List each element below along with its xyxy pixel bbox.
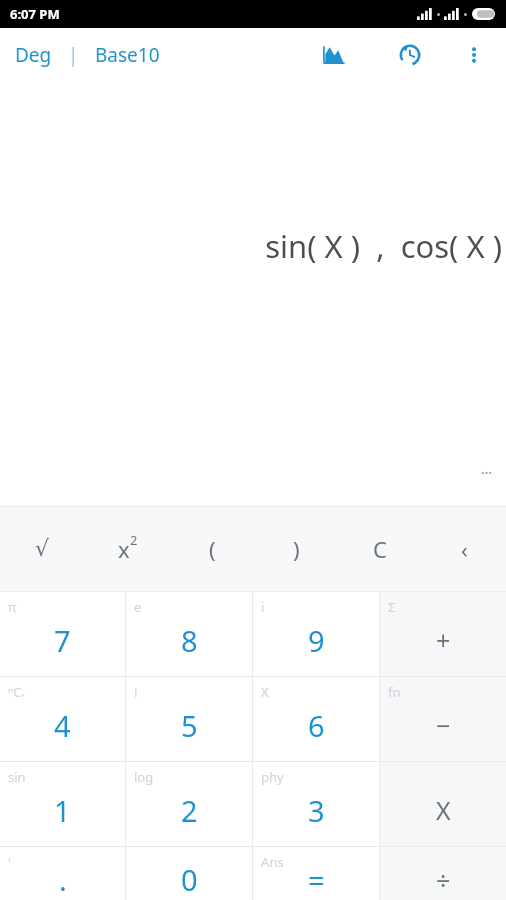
- staticText: =: [308, 860, 325, 899]
- staticText: ...: [481, 460, 492, 478]
- staticText: fn: [388, 683, 401, 701]
- button[interactable]: √: [0, 507, 85, 591]
- button[interactable]: (: [170, 507, 254, 591]
- staticText: 7: [54, 621, 71, 660]
- button[interactable]: phy: [253, 762, 379, 846]
- staticText: ⁿCᵣ: [8, 683, 25, 701]
- button[interactable]: log: [126, 762, 252, 846]
- button[interactable]: ‹: [422, 507, 506, 591]
- staticText: log: [134, 768, 154, 786]
- button[interactable]: ): [254, 507, 338, 591]
- staticText: +: [436, 623, 451, 657]
- staticText: e: [134, 598, 142, 616]
- staticText: −: [436, 708, 451, 742]
- staticText: ‹: [461, 534, 468, 564]
- staticText: √: [35, 536, 50, 562]
- button[interactable]: Σ: [380, 592, 506, 676]
- button[interactable]: fn: [380, 677, 506, 761]
- staticText: 4: [54, 706, 71, 745]
- button[interactable]: ⁿCᵣ: [0, 677, 125, 761]
- staticText: phy: [261, 768, 284, 786]
- staticText: ': [8, 853, 11, 871]
- staticText: 6: [308, 706, 325, 745]
- button[interactable]: Base10: [93, 38, 162, 72]
- staticText: π: [8, 598, 17, 616]
- staticText: !: [134, 683, 138, 701]
- staticText: Base10: [95, 42, 160, 68]
- staticText: (: [209, 534, 216, 564]
- staticText: X: [436, 793, 451, 827]
- button[interactable]: Graph: [312, 33, 356, 77]
- button[interactable]: C: [338, 507, 422, 591]
- staticText: Ans: [261, 853, 284, 871]
- button[interactable]: 0: [126, 847, 252, 900]
- staticText: .: [59, 860, 67, 899]
- button[interactable]: History: [388, 33, 432, 77]
- button[interactable]: Ans: [253, 847, 379, 900]
- button[interactable]: sin: [0, 762, 125, 846]
- staticText: X: [261, 683, 269, 701]
- staticText: Deg: [15, 42, 52, 68]
- button[interactable]: Deg: [13, 38, 54, 72]
- staticText: 9: [308, 621, 325, 660]
- button[interactable]: ÷: [380, 847, 506, 900]
- staticText: sin( X ) , cos( X ): [265, 225, 502, 267]
- staticText: 6:07 PM: [10, 5, 60, 23]
- staticText: i: [261, 598, 265, 616]
- staticText: ÷: [436, 863, 451, 897]
- staticText: 1: [54, 791, 71, 830]
- staticText: x: [118, 534, 130, 564]
- button[interactable]: More options: [454, 35, 494, 75]
- button[interactable]: e: [126, 592, 252, 676]
- staticText: Σ: [388, 598, 396, 616]
- staticText: 0: [181, 860, 198, 899]
- button[interactable]: X: [380, 762, 506, 846]
- button[interactable]: X: [253, 677, 379, 761]
- button[interactable]: x²: [85, 507, 170, 591]
- staticText: C: [373, 534, 387, 564]
- staticText: 2: [130, 531, 138, 549]
- button[interactable]: π: [0, 592, 125, 676]
- staticText: 3: [308, 791, 325, 830]
- staticText: sin: [8, 768, 26, 786]
- staticText: |: [68, 42, 79, 68]
- staticText: ): [293, 534, 300, 564]
- staticText: 2: [181, 791, 198, 830]
- button[interactable]: !: [126, 677, 252, 761]
- staticText: 5: [181, 706, 198, 745]
- button[interactable]: i: [253, 592, 379, 676]
- button[interactable]: ': [0, 847, 125, 900]
- staticText: 8: [181, 621, 198, 660]
